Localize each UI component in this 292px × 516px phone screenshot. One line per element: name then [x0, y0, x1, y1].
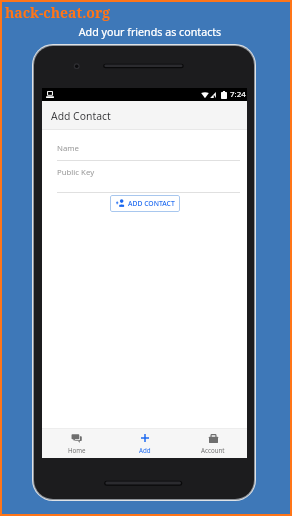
button[interactable]: Home — [42, 429, 111, 458]
staticText: Name — [57, 143, 79, 154]
staticText: Account — [201, 446, 225, 454]
button[interactable]: Add — [111, 429, 179, 458]
staticText: Add your friends as contacts — [4, 25, 292, 40]
staticText: Add — [139, 446, 151, 454]
staticText: Home — [68, 446, 86, 454]
staticText: ADD CONTACT — [128, 199, 175, 208]
staticText: Public Key — [57, 167, 95, 178]
button[interactable]: ADD CONTACT — [110, 195, 180, 212]
staticText: 7:24 — [230, 89, 246, 100]
staticText: Add Contact — [51, 109, 111, 123]
button[interactable]: Account — [179, 429, 247, 458]
staticText: hack-cheat.org — [5, 3, 111, 22]
